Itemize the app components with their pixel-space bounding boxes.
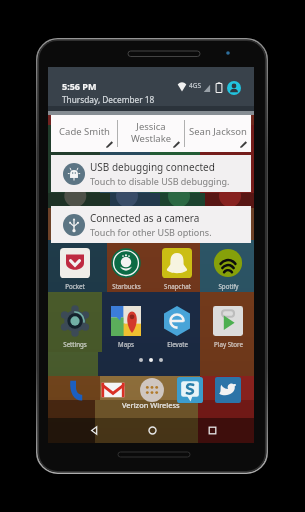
staticText: Jessica Westlake: [120, 120, 182, 144]
button[interactable]: Gmail: [98, 376, 128, 404]
staticText: Maps: [118, 340, 134, 348]
staticText: 4GS: [189, 81, 202, 90]
staticText: Spotify: [218, 282, 239, 290]
button[interactable]: Jessica Westlake: [118, 115, 184, 152]
staticText: Connected as a camera: [90, 211, 200, 225]
button[interactable]: Messaging: [175, 376, 205, 404]
button[interactable]: USB debugging connected: [51, 155, 251, 192]
staticText: Cade Smith: [59, 125, 110, 138]
button[interactable]: Back: [82, 418, 106, 443]
button[interactable]: Cade Smith: [51, 115, 117, 152]
button[interactable]: User profile: [227, 81, 241, 95]
button[interactable]: Phone: [61, 376, 91, 404]
staticText: Elevate: [167, 340, 188, 348]
staticText: Verizon Wireless: [122, 400, 180, 410]
button[interactable]: Starbucks: [102, 248, 150, 290]
button[interactable]: Apps: [137, 376, 167, 404]
staticText: Pocket: [65, 282, 85, 290]
staticText: 5:56 PM: [62, 80, 97, 92]
button[interactable]: Spotify: [204, 248, 252, 290]
button[interactable]: Maps: [102, 306, 150, 348]
staticText: Snapchat: [164, 282, 191, 290]
staticText: Settings: [63, 340, 87, 348]
staticText: USB debugging connected: [90, 160, 215, 174]
staticText: Play Store: [214, 340, 243, 348]
button[interactable]: Pocket: [51, 248, 99, 290]
staticText: Touch to disable USB debugging.: [90, 175, 230, 187]
button[interactable]: Settings: [51, 306, 99, 348]
staticText: Thursday, December 18: [62, 94, 155, 105]
staticText: Sean Jackson: [189, 125, 247, 138]
staticText: Starbucks: [112, 282, 141, 290]
button[interactable]: Recent apps: [200, 418, 224, 443]
button[interactable]: Snapchat: [153, 248, 201, 290]
button[interactable]: Sean Jackson: [185, 115, 251, 152]
staticText: Touch for other USB options.: [90, 226, 212, 238]
button[interactable]: Twitter: [213, 376, 243, 404]
button[interactable]: Connected as a camera: [51, 206, 251, 243]
button[interactable]: Elevate: [153, 306, 201, 348]
button[interactable]: Home: [140, 418, 164, 443]
button[interactable]: Play Store: [204, 306, 252, 348]
